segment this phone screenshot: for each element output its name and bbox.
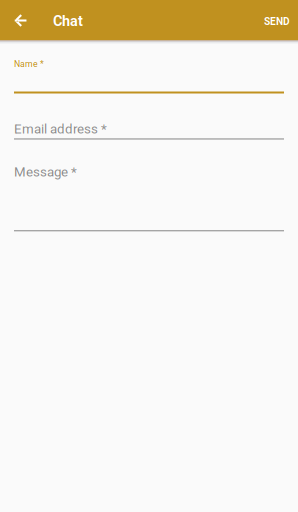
- staticText: Message *: [14, 164, 77, 180]
- button[interactable]: Back: [6, 0, 34, 40]
- button[interactable]: Email address *: [14, 93, 284, 140]
- staticText: Name *: [14, 59, 44, 69]
- staticText: SEND: [264, 16, 290, 27]
- staticText: Email address *: [14, 121, 107, 137]
- button[interactable]: Name *: [14, 44, 284, 93]
- staticText: Chat: [53, 13, 83, 30]
- button[interactable]: SEND: [254, 1, 298, 41]
- button[interactable]: Message *: [14, 140, 284, 231]
